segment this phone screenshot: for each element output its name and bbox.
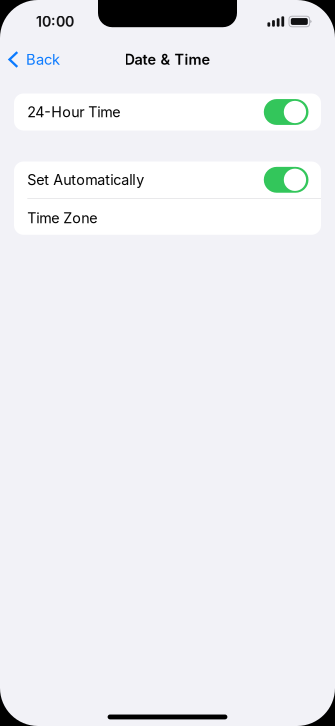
button[interactable]: Time Zone xyxy=(14,199,321,235)
staticText: Date & Time xyxy=(124,51,210,68)
button[interactable]: 24-Hour Time xyxy=(14,93,321,130)
staticText: 24-Hour Time xyxy=(27,103,120,121)
staticText: 10:00 xyxy=(36,13,74,30)
staticText: Back xyxy=(26,51,60,68)
button[interactable]: Back xyxy=(0,45,70,74)
button[interactable]: Set Automatically xyxy=(14,161,321,198)
staticText: Set Automatically xyxy=(27,171,144,188)
staticText: Time Zone xyxy=(27,209,97,227)
